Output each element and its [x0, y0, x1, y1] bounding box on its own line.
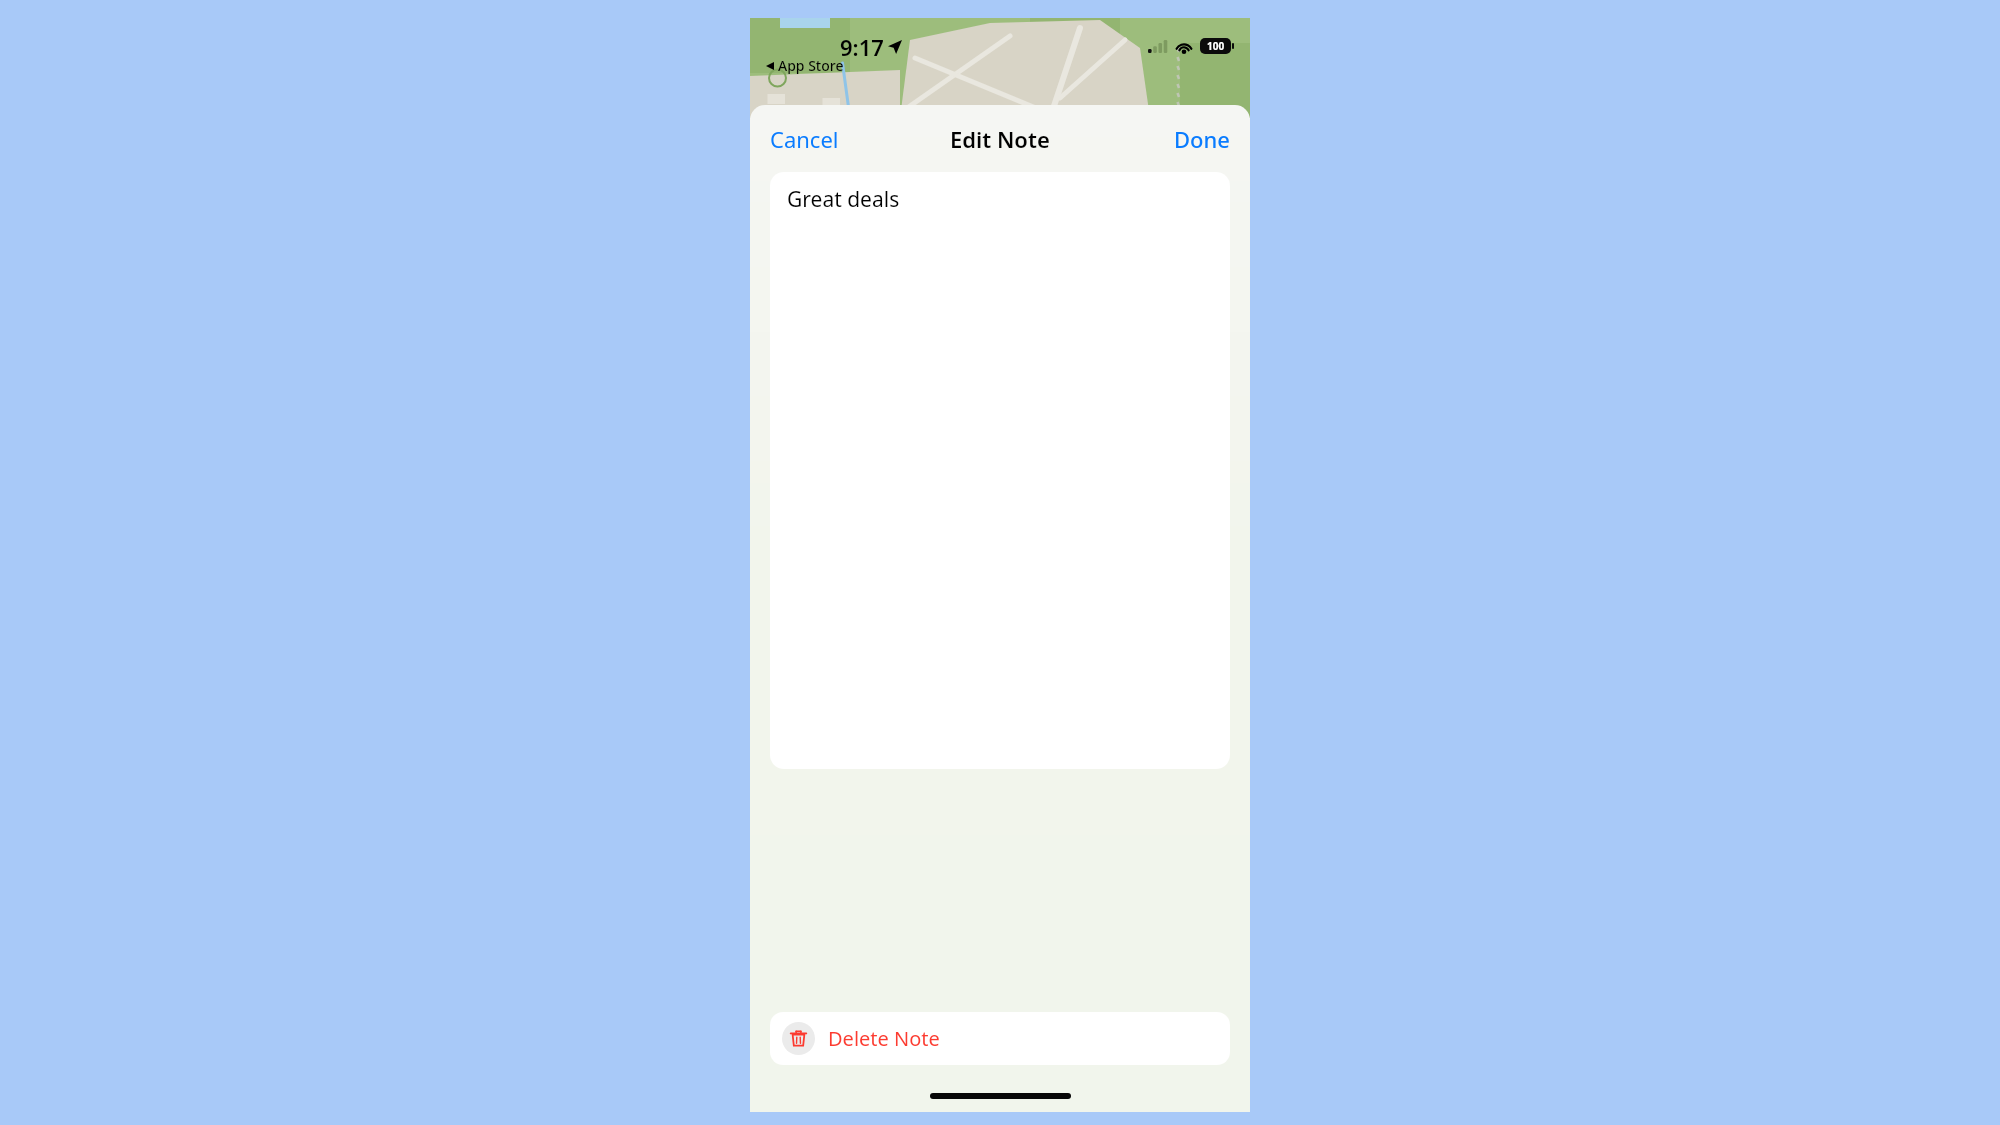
button[interactable]: Great deals — [770, 172, 1230, 769]
staticText: 100 — [1207, 39, 1225, 53]
button[interactable]: Back to App Store — [766, 56, 844, 75]
staticText: Edit Note — [950, 124, 1050, 154]
staticText: 9:17 — [840, 32, 884, 62]
staticText: Done — [1174, 124, 1230, 154]
staticText: App Store — [778, 56, 844, 75]
button[interactable]: Delete Note — [770, 1012, 1230, 1065]
button[interactable]: Cancel — [756, 116, 853, 162]
staticText: Great deals — [787, 185, 900, 214]
staticText: Delete Note — [828, 1025, 940, 1052]
button[interactable]: Done — [1160, 116, 1244, 162]
staticText: Cancel — [770, 124, 839, 154]
